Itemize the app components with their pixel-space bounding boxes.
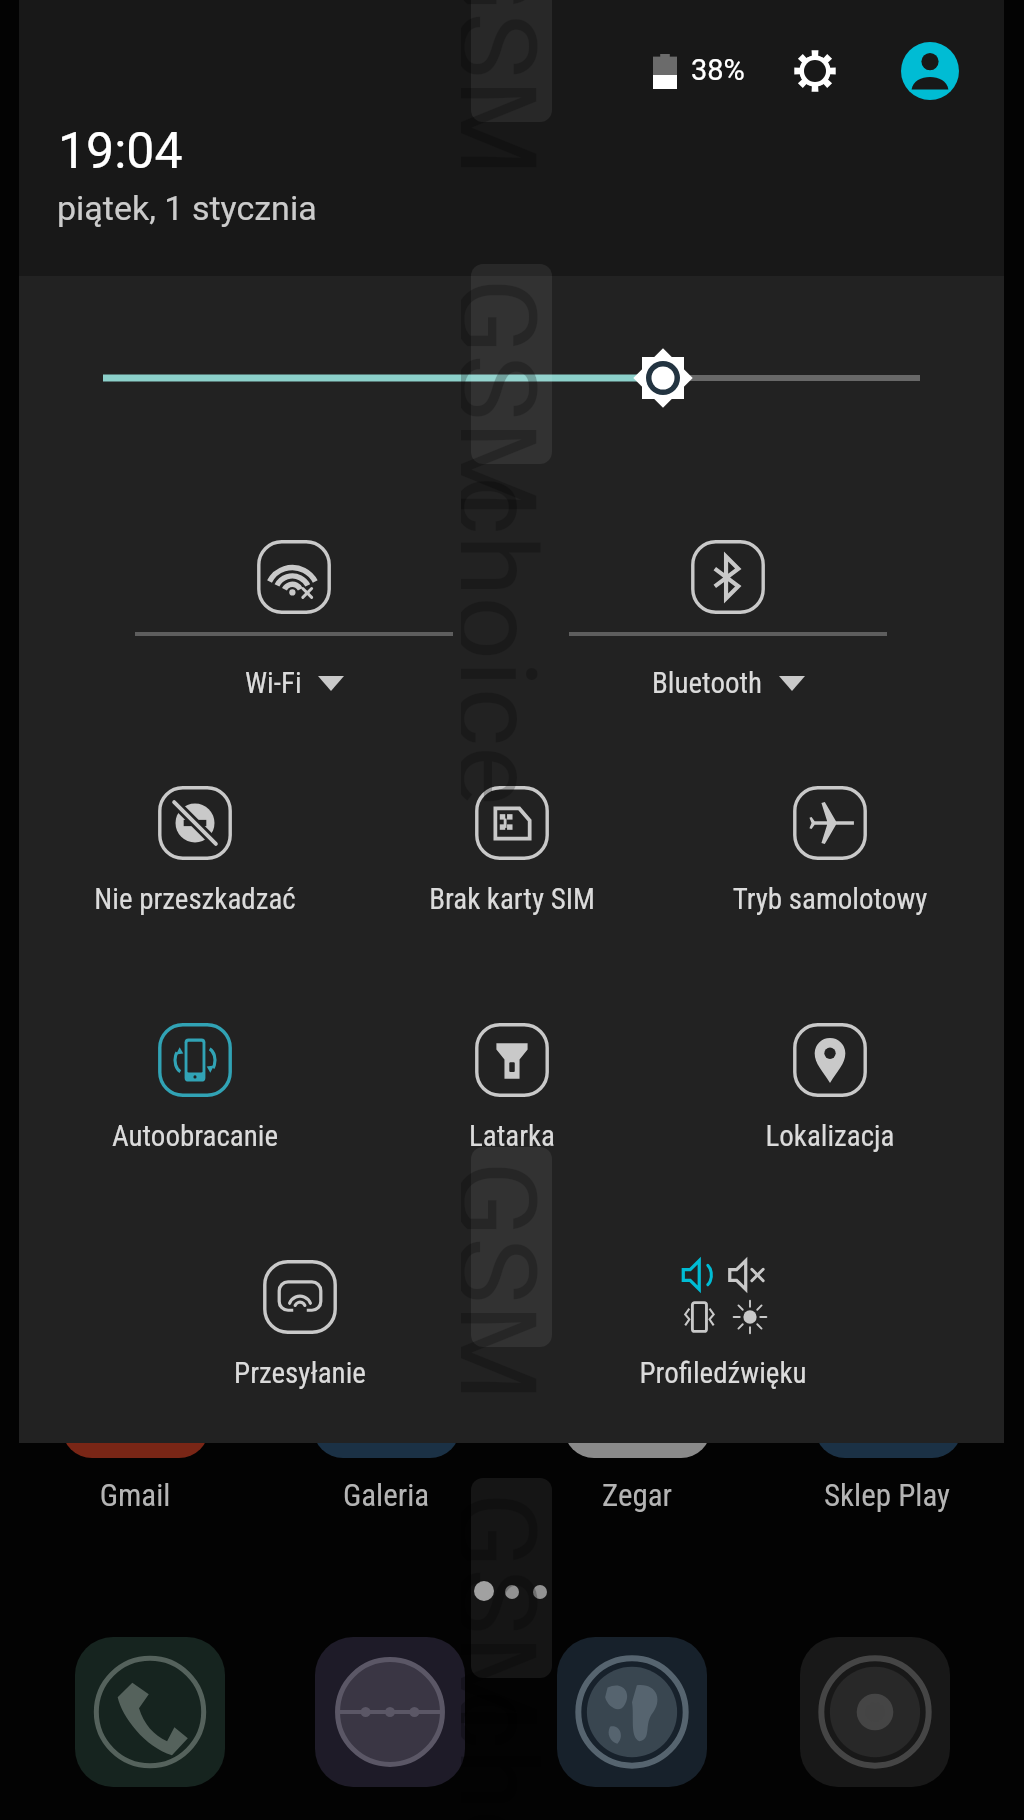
button[interactable]: Settings <box>789 45 841 97</box>
button[interactable] <box>45 1005 345 1165</box>
staticText: 19:04 <box>58 122 183 181</box>
button[interactable]: Camera <box>800 1637 950 1787</box>
staticText: GSM <box>461 1492 561 1733</box>
staticText: GSM <box>461 278 561 519</box>
button[interactable]: User account <box>901 42 959 100</box>
staticText: Wi-Fi <box>245 666 302 700</box>
staticText: Bluetooth <box>652 666 763 700</box>
staticText: GSM <box>461 0 561 177</box>
staticText: Profiledźwięku <box>563 1356 883 1390</box>
button[interactable] <box>150 1242 450 1402</box>
staticText: Galeria <box>266 1477 506 1513</box>
staticText: Gmail <box>15 1477 255 1513</box>
staticText: Przesyłanie <box>140 1356 460 1390</box>
staticText: Tryb samolotowy <box>670 882 990 916</box>
button[interactable] <box>553 520 903 710</box>
button[interactable]: All apps <box>315 1637 465 1787</box>
staticText: choice <box>461 476 561 806</box>
staticText: Brak karty SIM <box>352 882 672 916</box>
staticText: Zegar <box>517 1477 757 1513</box>
staticText: Autoobracanie <box>35 1119 355 1153</box>
button[interactable]: Phone <box>75 1637 225 1787</box>
staticText: Latarka <box>352 1119 672 1153</box>
button[interactable] <box>680 768 980 928</box>
staticText: Sklep Play <box>767 1477 1007 1513</box>
button[interactable]: Sound profile <box>573 1242 873 1402</box>
staticText: choice <box>461 1690 561 1820</box>
staticText: Nie przeszkadzać <box>35 882 355 916</box>
button[interactable] <box>362 1005 662 1165</box>
staticText: GSM <box>461 1161 561 1402</box>
button[interactable] <box>680 1005 980 1165</box>
button[interactable] <box>362 768 662 928</box>
staticText: piątek, 1 stycznia <box>57 188 317 228</box>
button[interactable] <box>119 520 469 710</box>
button[interactable]: Browser <box>557 1637 707 1787</box>
staticText: Lokalizacja <box>670 1119 990 1153</box>
staticText: 38% <box>691 53 745 87</box>
button[interactable] <box>45 768 345 928</box>
